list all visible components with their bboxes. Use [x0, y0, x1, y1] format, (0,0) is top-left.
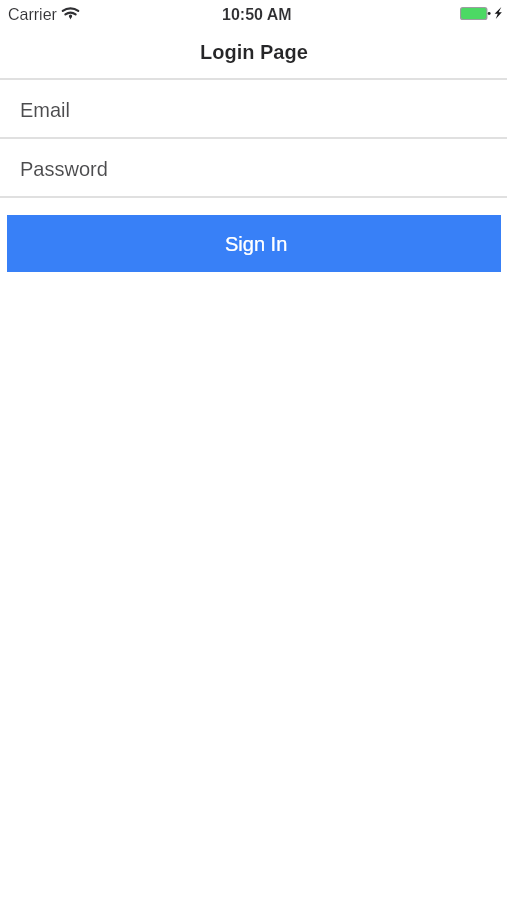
other: Charging — [494, 7, 502, 19]
staticText: Email — [20, 99, 71, 121]
button[interactable]: Email — [0, 80, 507, 137]
staticText: Sign In — [225, 233, 288, 255]
button[interactable]: Password — [0, 139, 507, 196]
other: Wi-Fi signal — [63, 5, 78, 18]
other: Battery charging — [460, 7, 491, 20]
staticText: 10:50 AM — [222, 6, 292, 24]
staticText: Carrier — [8, 6, 57, 24]
staticText: Password — [20, 158, 108, 180]
staticText: Login Page — [200, 41, 308, 63]
button[interactable]: Sign In — [7, 215, 501, 272]
